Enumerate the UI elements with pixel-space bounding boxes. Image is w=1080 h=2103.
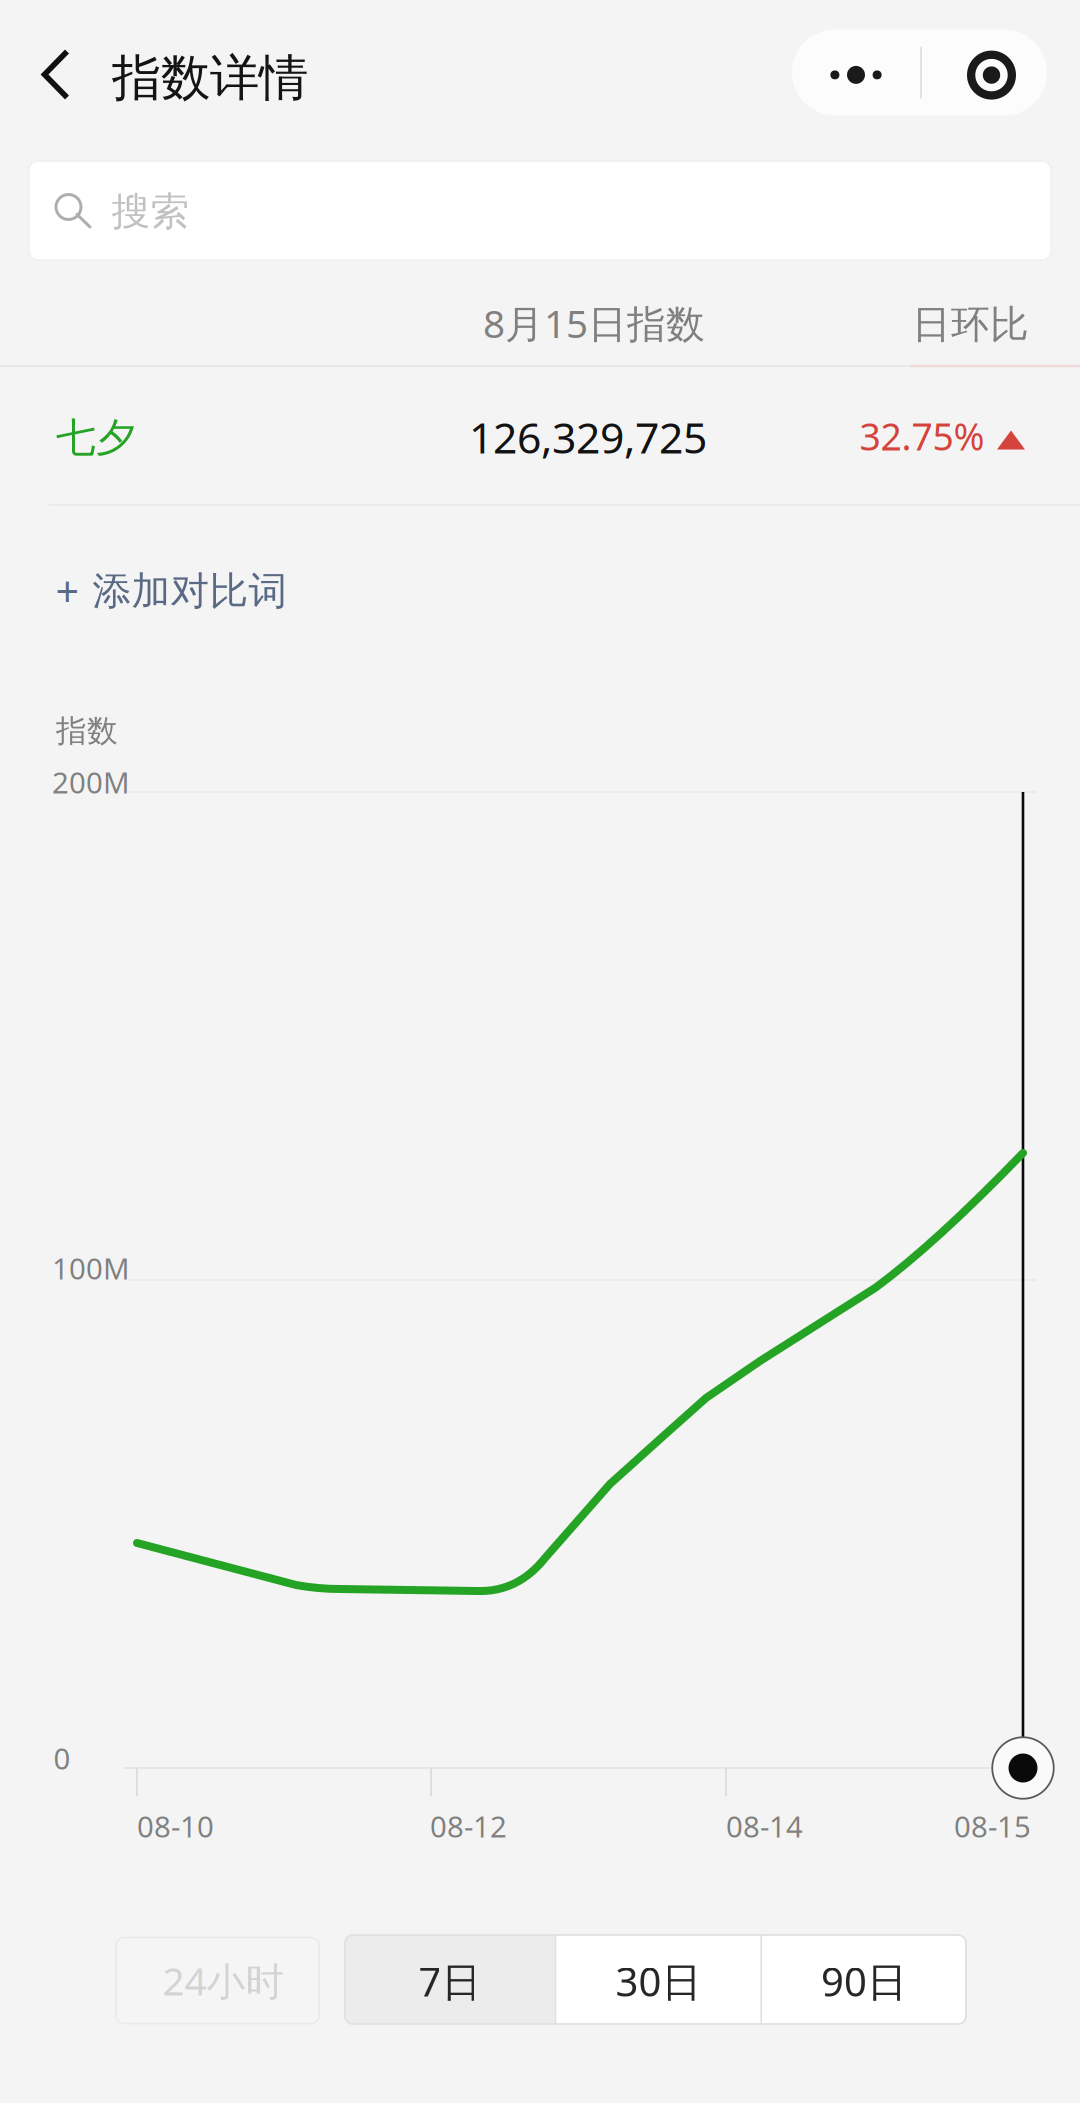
button[interactable]: 7日 [345, 1935, 555, 2024]
staticText: 指数 [56, 712, 118, 750]
staticText: 0 [53, 1738, 70, 1777]
staticText: 24小时 [162, 1955, 284, 2006]
button[interactable]: 30日 [556, 1935, 760, 2024]
staticText: 搜索 [111, 188, 189, 235]
staticText: 90日 [821, 1954, 907, 2007]
staticText: 七夕 [56, 413, 136, 462]
button[interactable]: 搜索 [29, 161, 1051, 260]
staticText: 30日 [615, 1954, 701, 2007]
staticText: 08-10 [137, 1806, 214, 1845]
staticText: 8月15日指数 [483, 297, 705, 349]
staticText: 100M [52, 1248, 130, 1287]
staticText: + [55, 564, 79, 618]
button[interactable]: Back [7, 16, 103, 132]
button[interactable]: Close [928, 32, 1054, 118]
button[interactable]: 24小时 [116, 1937, 319, 2023]
button[interactable]: More [792, 32, 920, 118]
button[interactable]: + [44, 543, 464, 639]
staticText: 指数详情 [112, 48, 308, 108]
staticText: 日环比 [912, 301, 1029, 348]
staticText: 08-12 [430, 1806, 507, 1845]
staticText: 08-14 [726, 1806, 803, 1845]
staticText: 添加对比词 [92, 567, 287, 615]
staticText: 08-15 [954, 1806, 1031, 1845]
button[interactable]: 90日 [762, 1935, 966, 2024]
staticText: 126,329,725 [469, 409, 707, 465]
staticText: 7日 [418, 1954, 481, 2007]
staticText: 200M [52, 762, 130, 801]
staticText: 32.75% [859, 411, 984, 461]
